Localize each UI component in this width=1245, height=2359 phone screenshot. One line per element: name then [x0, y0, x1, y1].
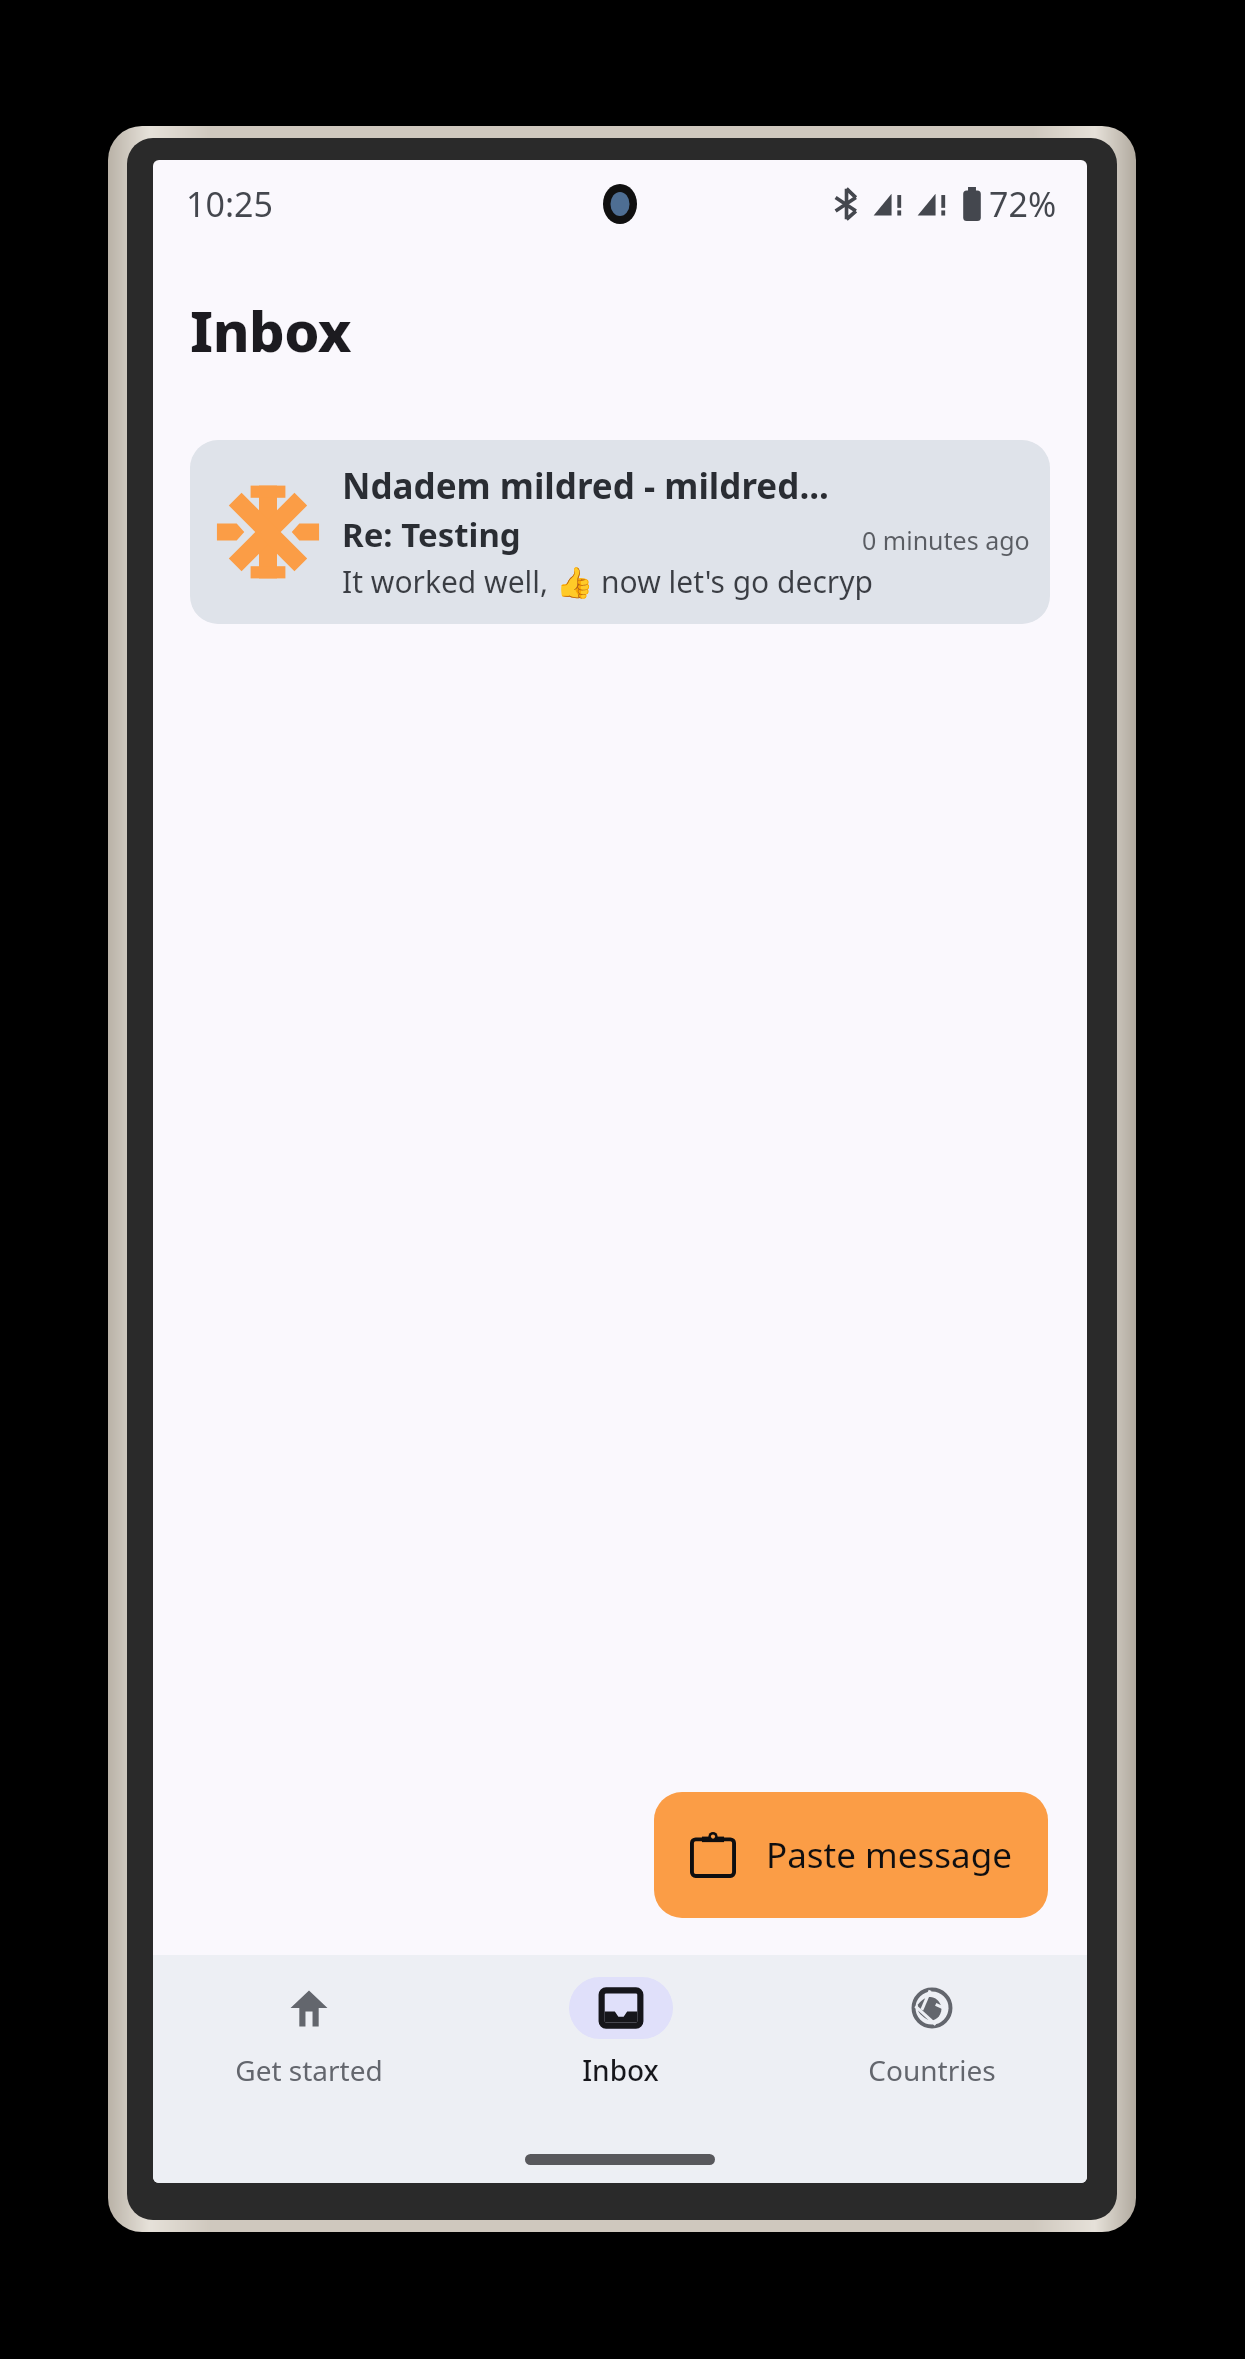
staticText: 0 minutes ago [862, 523, 1030, 557]
staticText: It worked well, 👍 now let's go decryp [342, 561, 873, 602]
button[interactable]: Paste message [654, 1792, 1048, 1918]
button[interactable]: Inbox [465, 1977, 776, 2089]
staticText: Ndadem mildred - mildred... [342, 462, 829, 510]
staticText: 72% [989, 181, 1057, 227]
staticText: 10:25 [186, 181, 273, 227]
staticText: Re: Testing [342, 512, 862, 557]
staticText: Inbox [582, 2051, 659, 2089]
staticText: Get started [235, 2051, 383, 2089]
staticText: Inbox [190, 292, 352, 368]
button[interactable]: Get started [153, 1977, 465, 2089]
button[interactable]: Countries [776, 1977, 1087, 2089]
staticText: Countries [868, 2051, 996, 2089]
staticText: Paste message [766, 1831, 1012, 1879]
button[interactable]: Ndadem mildred - mildred... [190, 440, 1050, 624]
